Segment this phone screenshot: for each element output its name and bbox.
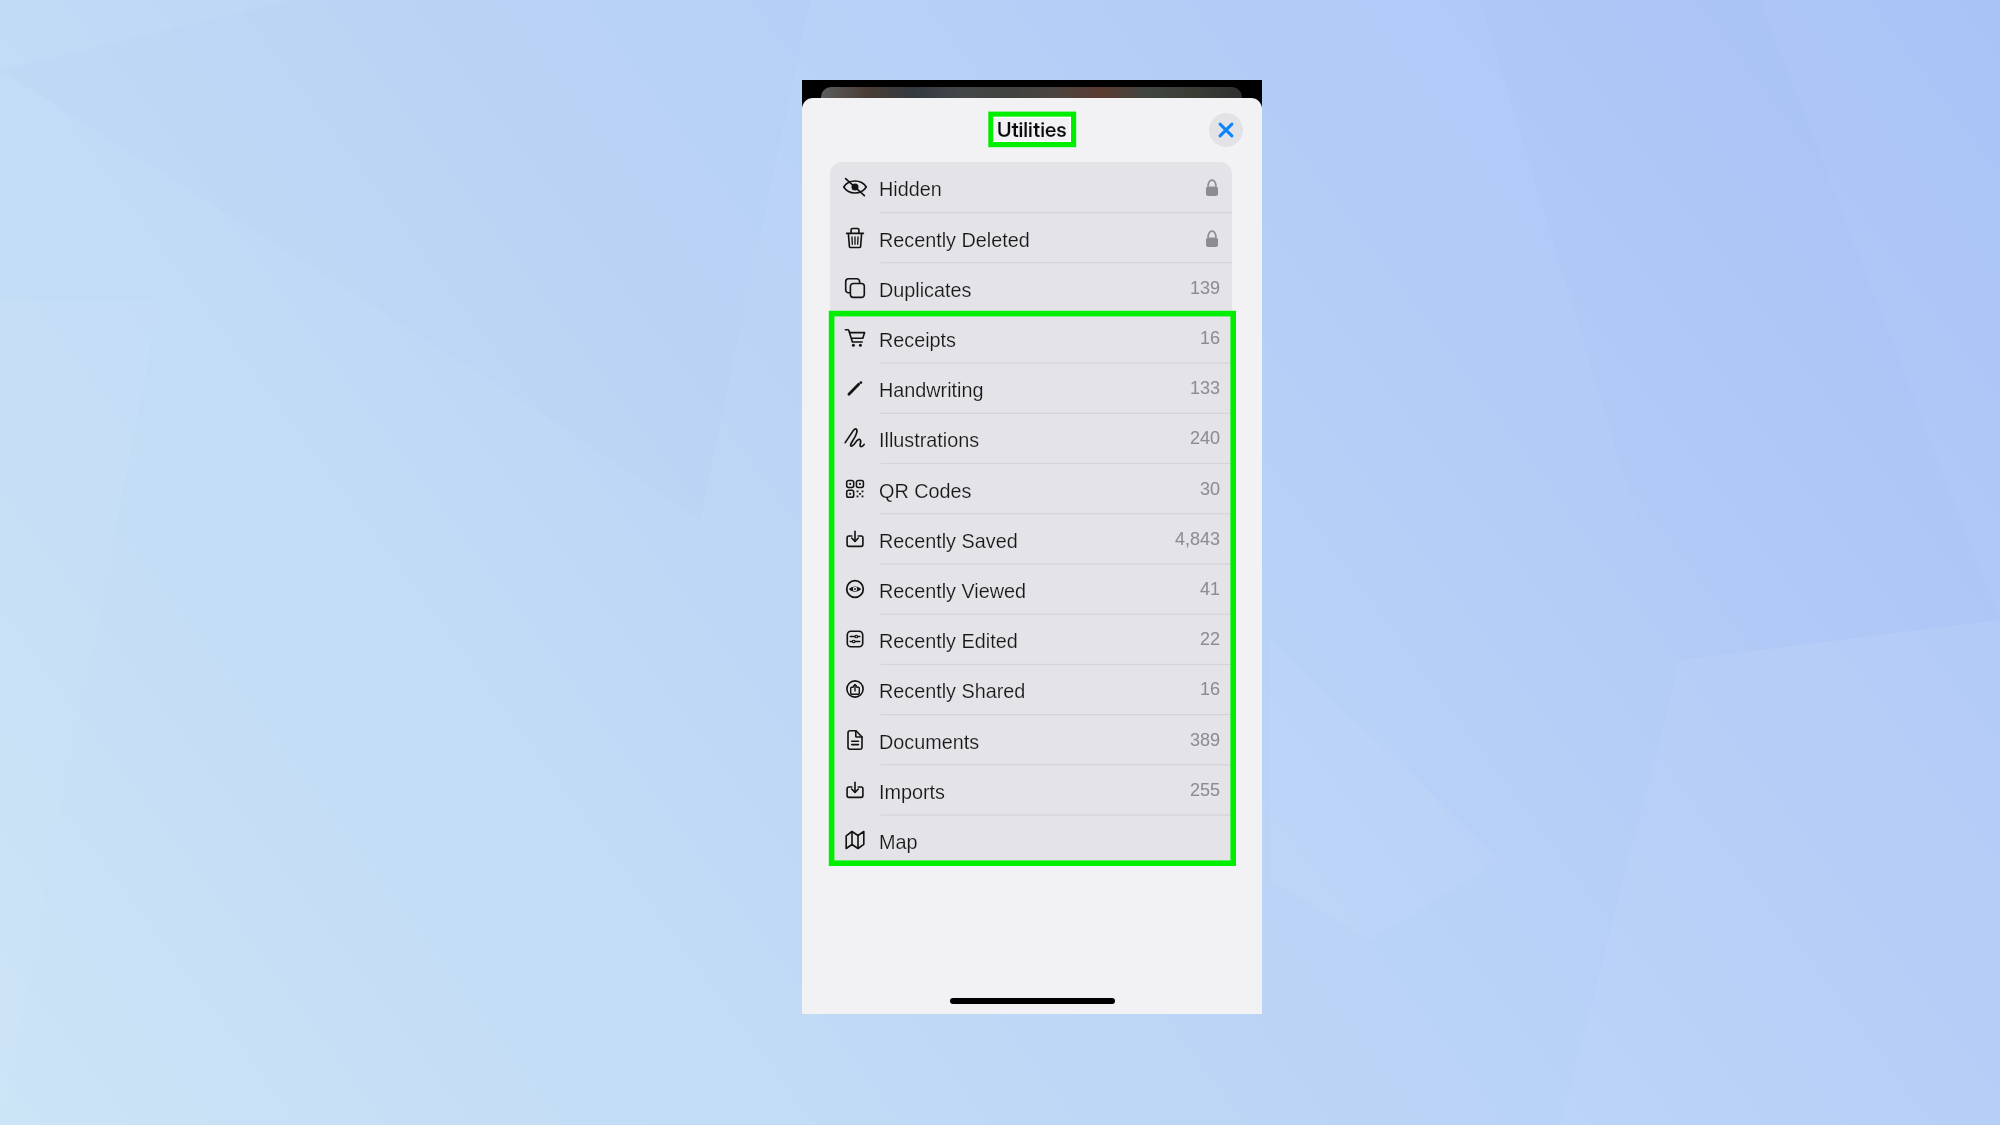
staticText: 240 <box>1190 428 1221 448</box>
staticText: 255 <box>1190 780 1221 800</box>
staticText: 22 <box>1200 629 1221 649</box>
button[interactable]: Illustrations <box>830 413 1232 463</box>
staticText: Utilities <box>997 117 1067 142</box>
staticText: Illustrations <box>879 429 980 451</box>
button[interactable]: Hidden <box>830 162 1232 212</box>
button[interactable]: Recently Deleted <box>830 213 1232 263</box>
staticText: 41 <box>1200 579 1221 599</box>
button[interactable]: Recently Shared <box>830 664 1232 714</box>
staticText: Documents <box>879 731 980 753</box>
button[interactable]: Imports <box>830 765 1232 815</box>
button[interactable]: Recently Saved <box>830 514 1232 564</box>
staticText: Duplicates <box>879 279 972 301</box>
staticText: 133 <box>1190 378 1221 398</box>
button[interactable]: QR Codes <box>830 464 1232 514</box>
staticText: Receipts <box>879 329 957 351</box>
staticText: 139 <box>1190 278 1221 298</box>
staticText: QR Codes <box>879 480 972 502</box>
button[interactable]: Map <box>830 815 1232 865</box>
staticText: Recently Saved <box>879 530 1018 552</box>
staticText: Map <box>879 831 918 853</box>
button[interactable]: Receipts <box>830 313 1232 363</box>
staticText: Handwriting <box>879 379 984 401</box>
staticText: Recently Shared <box>879 680 1026 702</box>
staticText: 30 <box>1200 479 1221 499</box>
staticText: 16 <box>1200 328 1221 348</box>
staticText: 4,843 <box>1175 529 1221 549</box>
staticText: Recently Edited <box>879 630 1018 652</box>
button[interactable]: Handwriting <box>830 363 1232 413</box>
staticText: Recently Deleted <box>879 229 1030 251</box>
staticText: 16 <box>1200 679 1221 699</box>
staticText: 389 <box>1190 730 1221 750</box>
button[interactable]: Documents <box>830 715 1232 765</box>
button[interactable]: Recently Edited <box>830 614 1232 664</box>
staticText: Recently Viewed <box>879 580 1027 602</box>
button[interactable]: Close <box>1209 113 1243 147</box>
button[interactable]: Recently Viewed <box>830 564 1232 614</box>
staticText: Hidden <box>879 178 942 200</box>
staticText: Imports <box>879 781 946 803</box>
button[interactable]: Duplicates <box>830 263 1232 313</box>
